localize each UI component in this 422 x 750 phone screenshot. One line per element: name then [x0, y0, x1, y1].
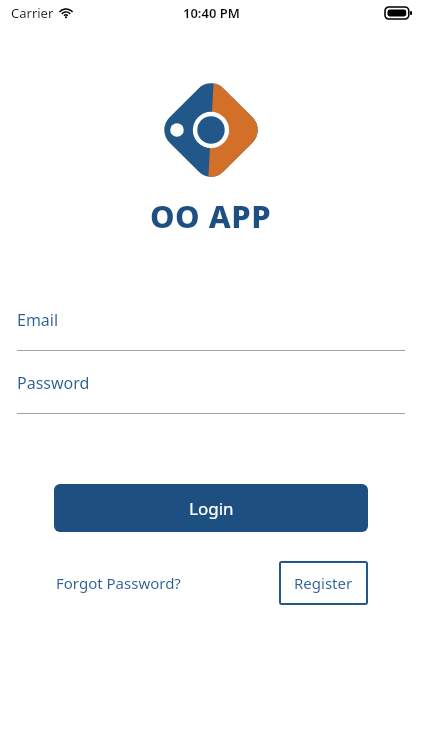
other: Wi-Fi signal	[59, 6, 73, 20]
staticText: 10:40 PM	[183, 4, 240, 22]
staticText: Email	[17, 309, 59, 331]
staticText: Login	[189, 497, 234, 520]
staticText: Register	[294, 573, 353, 593]
button[interactable]: Forgot Password?	[54, 564, 183, 602]
button[interactable]: Password	[0, 372, 422, 414]
other: OO APP logo	[157, 76, 265, 184]
button[interactable]: Login	[54, 484, 368, 532]
staticText: Forgot Password?	[56, 573, 181, 593]
button[interactable]: Email	[0, 309, 422, 351]
button[interactable]: Register	[279, 561, 368, 605]
staticText: OO APP	[150, 195, 272, 237]
other: Battery full	[385, 7, 412, 19]
staticText: Password	[17, 372, 90, 394]
staticText: Carrier	[11, 4, 54, 22]
